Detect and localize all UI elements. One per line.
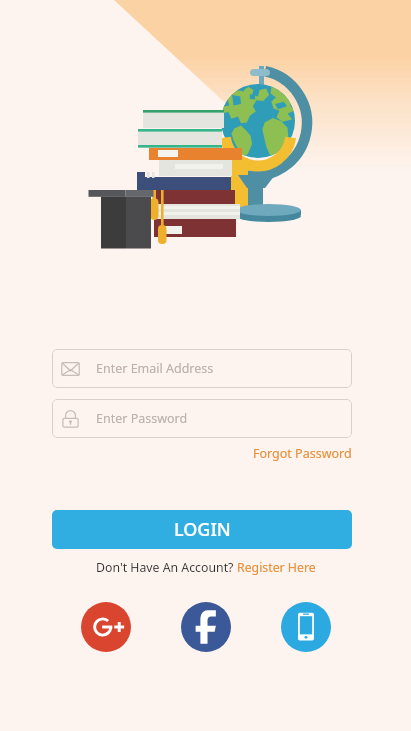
button[interactable]: Enter Email Address — [52, 349, 352, 388]
staticText: Forgot Password — [253, 445, 352, 462]
button[interactable]: Enter Password — [52, 399, 352, 438]
staticText: LOGIN — [174, 517, 231, 542]
button[interactable]: Sign in with Facebook — [181, 602, 231, 652]
button[interactable]: LOGIN — [52, 510, 352, 549]
staticText: Enter Password — [96, 410, 188, 427]
staticText: Register Here — [237, 559, 316, 576]
staticText: Enter Email Address — [96, 360, 214, 377]
staticText: Don't Have An Account? — [96, 559, 237, 576]
button[interactable]: Sign in with Phone — [281, 602, 331, 652]
button[interactable]: Sign in with Google — [81, 602, 131, 652]
button[interactable]: Register Here — [237, 559, 316, 576]
button[interactable]: Forgot Password — [253, 445, 352, 462]
